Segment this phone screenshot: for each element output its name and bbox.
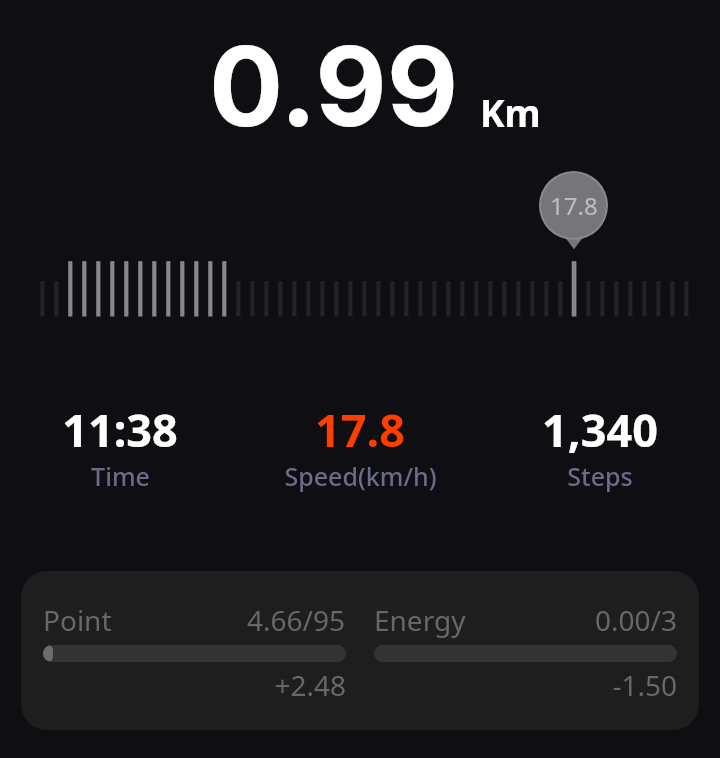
staticText: Speed(km/h)	[284, 459, 437, 493]
staticText: Time	[91, 459, 150, 493]
staticText: Km	[480, 87, 541, 137]
staticText: 4.66/95	[247, 601, 346, 639]
button[interactable]: Point	[21, 571, 699, 730]
button[interactable]: Current speed 17.8	[541, 173, 606, 238]
staticText: Point	[43, 601, 112, 639]
staticText: -1.50	[374, 666, 677, 704]
staticText: 0.99	[209, 19, 459, 152]
staticText: +2.48	[43, 666, 346, 704]
button[interactable]: 17.8	[240, 399, 480, 494]
staticText: 17.8	[315, 399, 405, 460]
staticText: Steps	[567, 459, 633, 493]
button[interactable]: Speed scale, 17.8 km/h	[0, 160, 720, 320]
staticText: 17.8	[550, 189, 598, 222]
staticText: 11:38	[62, 399, 178, 460]
staticText: Energy	[374, 601, 466, 639]
staticText: 1,340	[542, 399, 658, 460]
staticText: 0.00/3	[595, 601, 677, 639]
button[interactable]: 11:38	[0, 399, 240, 494]
button[interactable]: 1,340	[480, 399, 720, 494]
